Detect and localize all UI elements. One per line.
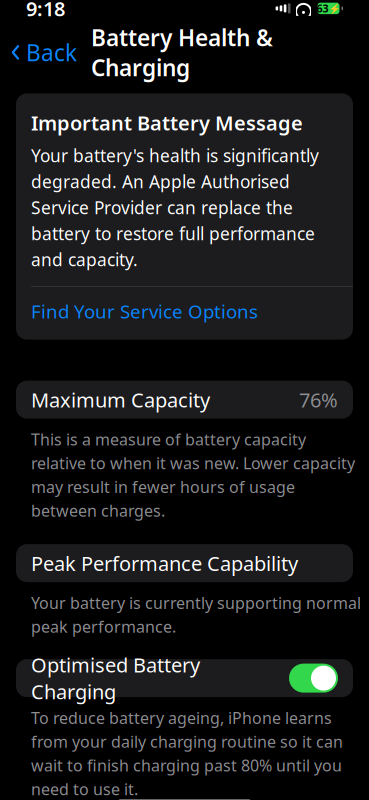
- staticText: 63: [316, 1, 328, 15]
- staticText: This is a measure of battery capacity re…: [31, 429, 355, 521]
- staticText: Your battery's health is significantly d…: [31, 144, 319, 271]
- staticText: ⚡: [328, 3, 340, 14]
- staticText: Important Battery Message: [31, 109, 303, 136]
- staticText: Maximum Capacity: [31, 386, 210, 413]
- staticText: 9:18: [26, 0, 65, 22]
- staticText: Optimised Battery Charging: [31, 652, 200, 705]
- button[interactable]: Back: [0, 31, 83, 73]
- button[interactable]: Peak Performance Capability: [16, 544, 353, 582]
- button[interactable]: Maximum Capacity: [16, 381, 353, 419]
- staticText: Find Your Service Options: [31, 299, 258, 324]
- staticText: Peak Performance Capability: [31, 550, 298, 576]
- button[interactable]: Find Your Service Options: [31, 287, 353, 336]
- staticText: To reduce battery ageing, iPhone learns …: [31, 707, 343, 800]
- staticText: Battery Health & Charging: [91, 22, 273, 82]
- button[interactable]: Optimised Battery Charging: [16, 659, 353, 697]
- staticText: Back: [26, 37, 77, 67]
- staticText: Your battery is currently supporting nor…: [31, 592, 361, 637]
- staticText: 76%: [299, 386, 338, 413]
